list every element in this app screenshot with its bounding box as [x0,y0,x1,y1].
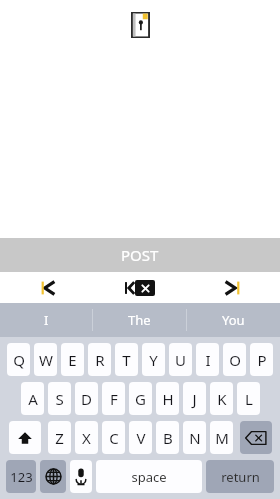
staticText: R [95,350,105,370]
staticText: L [245,389,253,409]
button[interactable]: J [183,382,206,415]
staticText: D [81,389,92,409]
staticText: return [221,468,260,486]
staticText: Q [13,350,25,370]
staticText: M [215,428,229,448]
button[interactable]: W [34,343,57,376]
staticText: S [55,389,64,409]
staticText: G [135,389,146,409]
button[interactable]: S [48,382,71,415]
button[interactable]: K [210,382,233,415]
button[interactable]: U [169,343,192,376]
button[interactable]: G [129,382,152,415]
staticText: C [109,428,119,448]
button[interactable]: space [96,460,202,493]
button[interactable]: 123 [6,460,36,493]
button[interactable]: Backspace [240,421,272,454]
button[interactable]: Previous [20,272,76,303]
button[interactable]: M [210,421,233,454]
staticText: T [122,350,131,370]
button[interactable]: H [156,382,179,415]
button[interactable]: V [129,421,152,454]
button[interactable]: Shift [9,421,41,454]
staticText: The [128,311,151,329]
button[interactable]: POST [0,238,280,272]
button[interactable]: return [206,460,274,493]
staticText: U [175,350,186,370]
staticText: F [110,389,118,409]
staticText: V [136,428,146,448]
button[interactable]: R [88,343,111,376]
staticText: K [217,389,227,409]
button[interactable]: I [0,303,92,337]
button[interactable]: You [187,303,280,337]
staticText: W [39,350,53,370]
button[interactable]: O [223,343,246,376]
staticText: Z [55,428,64,448]
staticText: 123 [10,468,33,486]
button[interactable]: L [237,382,260,415]
button[interactable]: I [196,343,219,376]
staticText: X [82,428,91,448]
staticText: You [222,311,245,329]
button[interactable]: Z [48,421,71,454]
staticText: I [44,311,49,329]
staticText: B [163,428,173,448]
button[interactable]: Switch language [40,460,66,493]
button[interactable]: P [250,343,273,376]
staticText: H [162,389,174,409]
staticText: E [68,350,77,370]
button[interactable]: X [75,421,98,454]
button[interactable]: B [156,421,179,454]
staticText: P [257,350,267,370]
staticText: POST [121,245,159,265]
button[interactable]: A [21,382,44,415]
staticText: I [205,350,211,370]
staticText: A [28,389,38,409]
button[interactable]: The [93,303,186,337]
button[interactable]: Dictate [70,460,92,493]
staticText: space [131,468,167,486]
staticText: O [229,350,241,370]
staticText: Y [149,350,158,370]
button[interactable]: Clear [125,272,155,303]
button[interactable]: Y [142,343,165,376]
button[interactable]: C [102,421,125,454]
button[interactable]: N [183,421,206,454]
staticText: N [189,428,201,448]
button[interactable]: Book [131,12,150,38]
staticText: J [192,389,197,409]
button[interactable]: Next [204,272,260,303]
button[interactable]: Q [7,343,30,376]
button[interactable]: D [75,382,98,415]
button[interactable]: E [61,343,84,376]
button[interactable]: T [115,343,138,376]
button[interactable]: F [102,382,125,415]
